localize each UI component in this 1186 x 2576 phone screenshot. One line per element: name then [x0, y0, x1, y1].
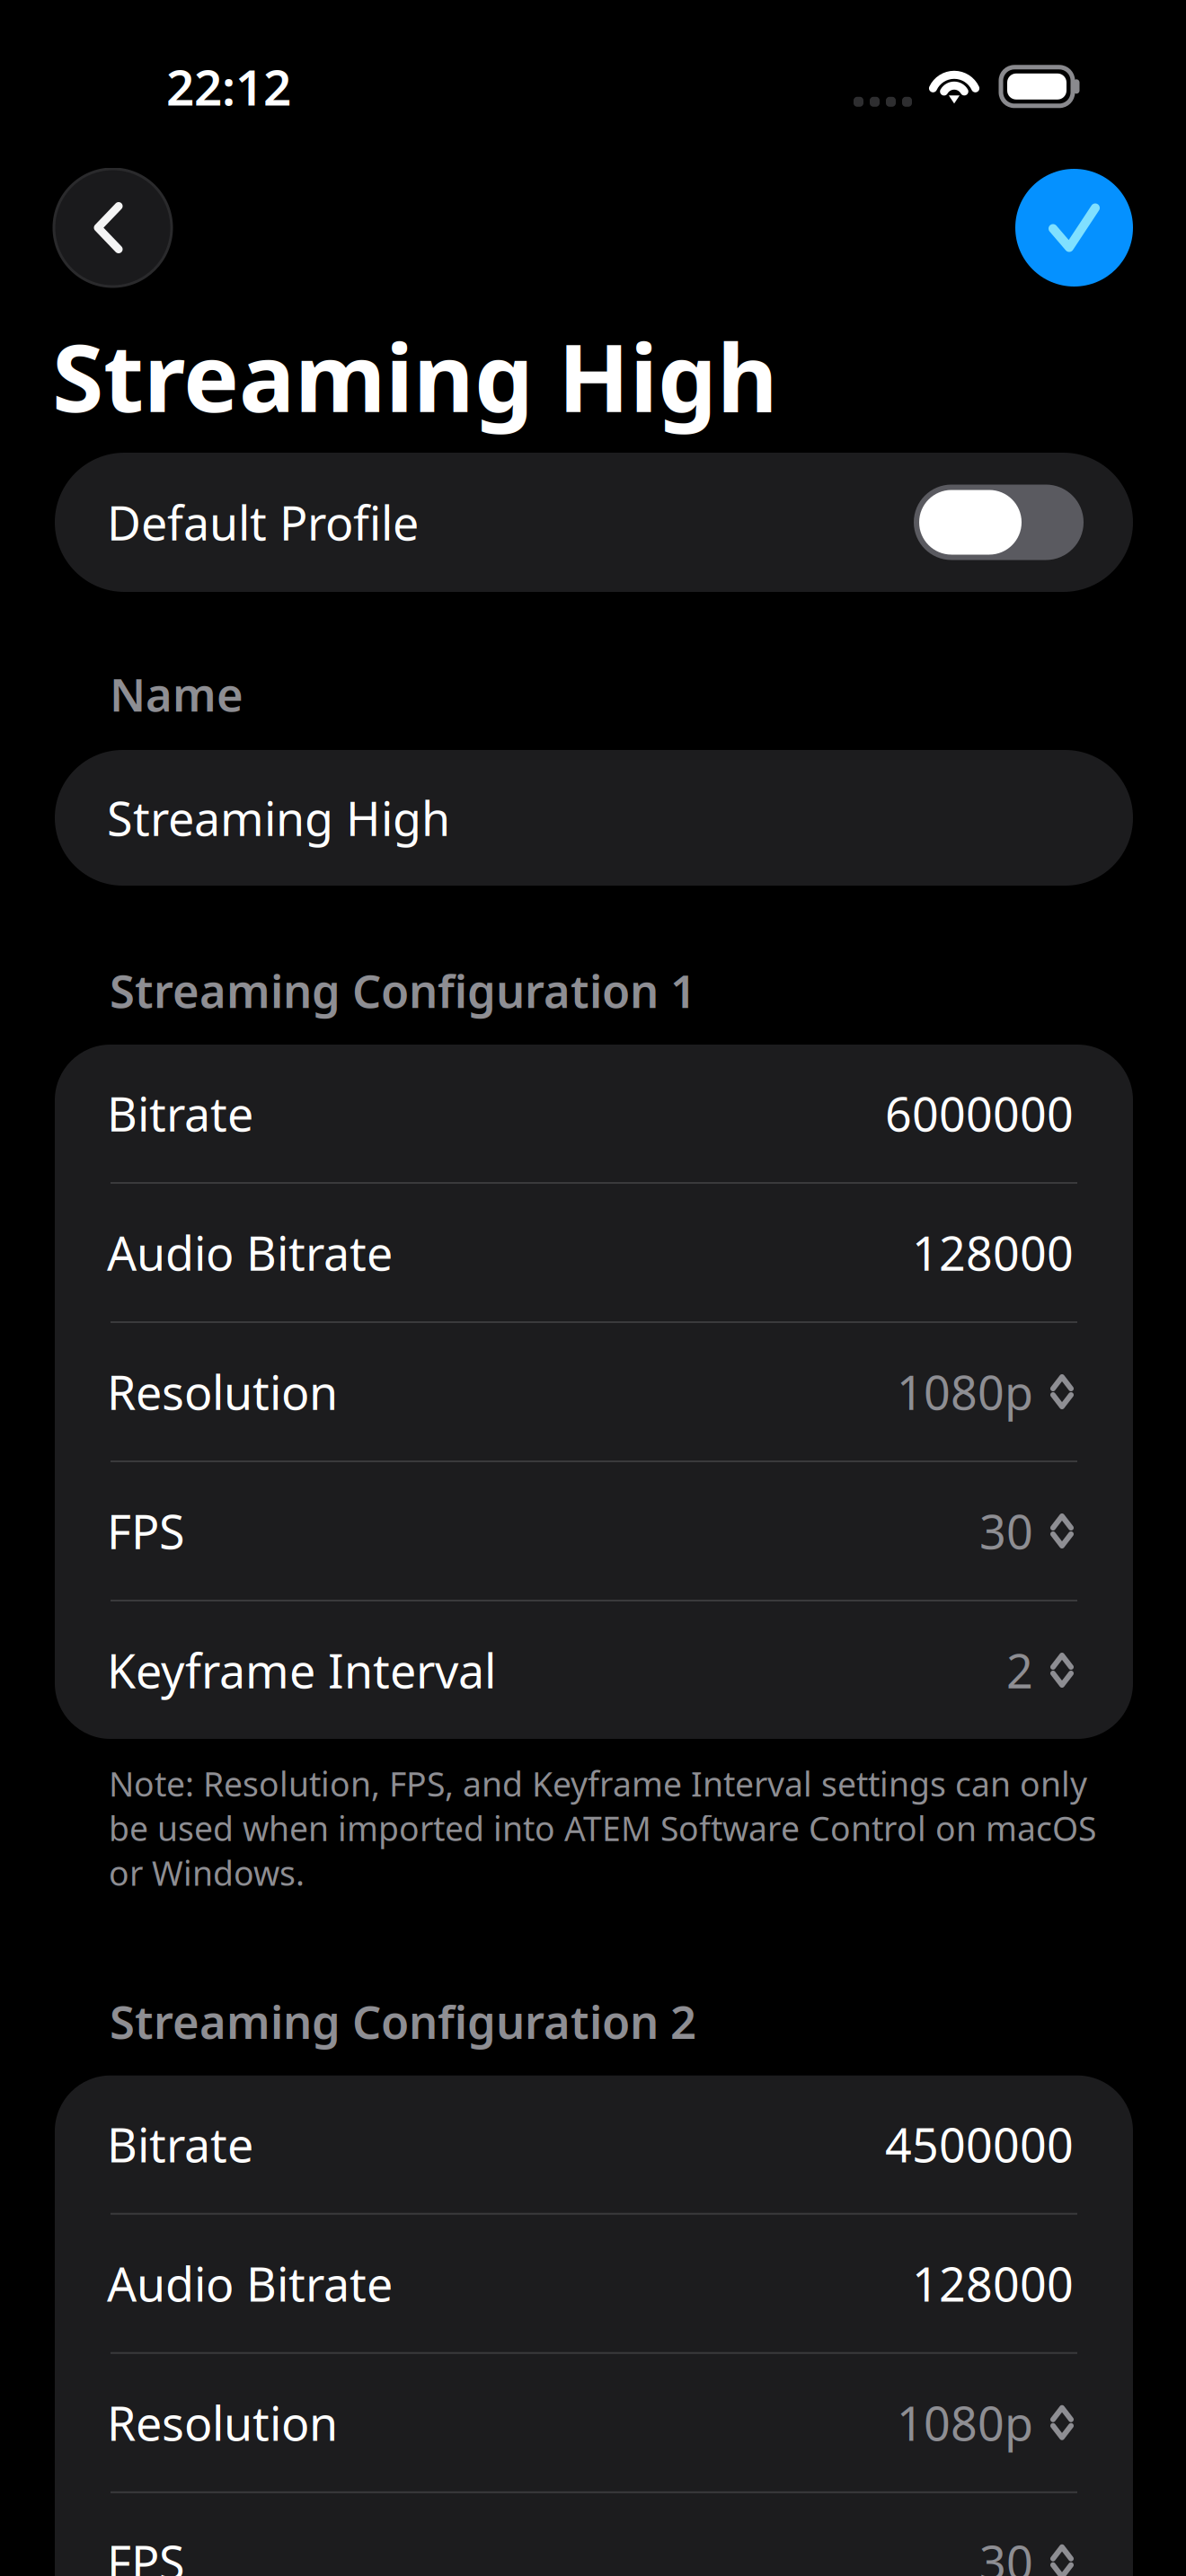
button[interactable]: Keyframe Interval	[55, 1601, 1133, 1739]
staticText: Keyframe Interval	[107, 1639, 496, 1701]
staticText: Resolution	[107, 2392, 338, 2454]
button[interactable]: Audio Bitrate	[55, 1184, 1133, 1321]
button[interactable]: Back	[54, 169, 172, 287]
button[interactable]: Audio Bitrate	[55, 2215, 1133, 2352]
button[interactable]: Resolution	[55, 2354, 1133, 2491]
staticText: 22:12	[166, 54, 291, 119]
button[interactable]: Bitrate	[55, 2075, 1133, 2213]
button[interactable]: FPS	[55, 1462, 1133, 1600]
button[interactable]: FPS	[55, 2493, 1133, 2576]
staticText: Default Profile	[107, 491, 419, 553]
staticText: 128000	[912, 1222, 1074, 1284]
staticText: 4500000	[885, 2113, 1074, 2175]
staticText: Streaming Configuration 1	[110, 960, 696, 1021]
staticText: Bitrate	[107, 1082, 253, 1144]
staticText: Name	[110, 664, 243, 724]
staticText: Note: Resolution, FPS, and Keyframe Inte…	[109, 1761, 1096, 1895]
staticText: Bitrate	[107, 2113, 253, 2175]
staticText: Streaming High	[107, 787, 450, 849]
staticText: 6000000	[885, 1082, 1074, 1144]
staticText: Audio Bitrate	[107, 1222, 393, 1284]
staticText: 30	[979, 1500, 1033, 1562]
button[interactable]: Save	[1015, 169, 1133, 287]
button[interactable]: Bitrate	[55, 1045, 1133, 1182]
staticText: Audio Bitrate	[107, 2252, 393, 2314]
staticText: 1080p	[897, 2392, 1033, 2454]
button[interactable]: Resolution	[55, 1323, 1133, 1460]
button[interactable]: Default Profile	[55, 453, 1133, 592]
staticText: 128000	[912, 2252, 1074, 2314]
button[interactable]: Streaming High	[55, 750, 1133, 886]
staticText: FPS	[107, 2531, 185, 2576]
staticText: Streaming High	[52, 314, 778, 438]
staticText: 1080p	[897, 1361, 1033, 1423]
staticText: FPS	[107, 1500, 185, 1562]
staticText: 30	[979, 2531, 1033, 2576]
staticText: 2	[1006, 1639, 1033, 1701]
staticText: Streaming Configuration 2	[110, 1991, 696, 2051]
staticText: Resolution	[107, 1361, 338, 1423]
